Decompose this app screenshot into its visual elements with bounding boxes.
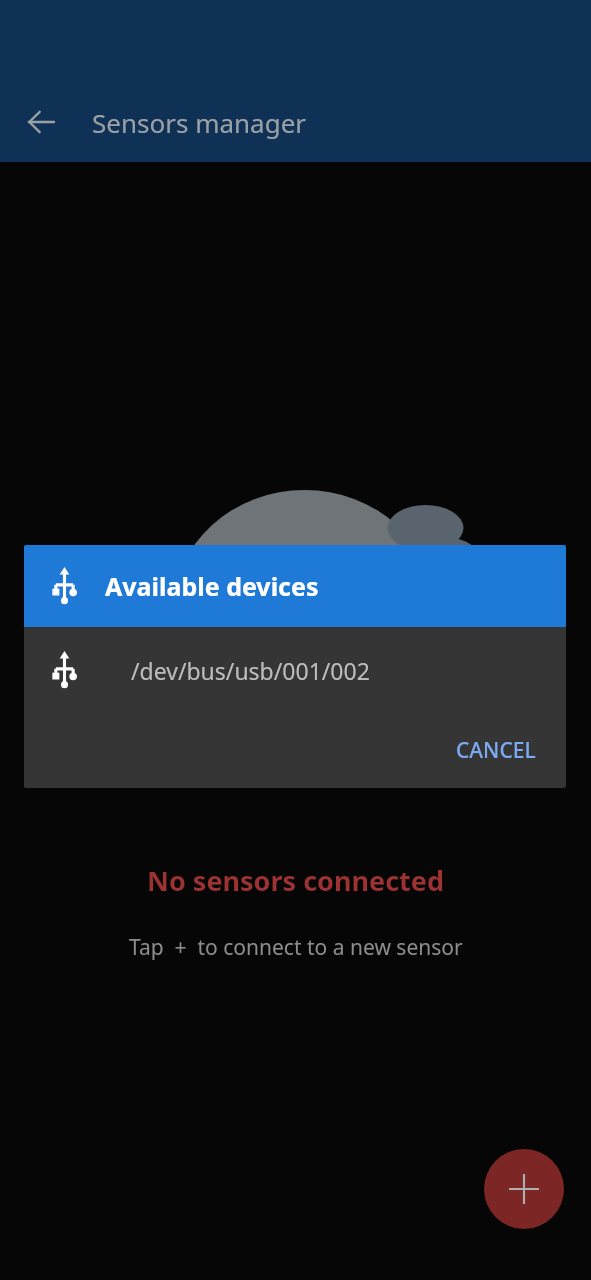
staticText: Available devices [105,569,319,603]
staticText: CANCEL [456,736,536,765]
staticText: Sensors manager [92,105,307,140]
button[interactable]: Back [16,97,66,147]
staticText: Tap + to connect to a new sensor [129,933,463,962]
button[interactable]: CANCEL [440,724,552,777]
button[interactable]: /dev/bus/usb/001/002 [24,627,566,713]
staticText: No sensors connected [147,862,444,899]
button[interactable]: Add sensor [484,1149,564,1229]
staticText: /dev/bus/usb/001/002 [131,655,370,686]
